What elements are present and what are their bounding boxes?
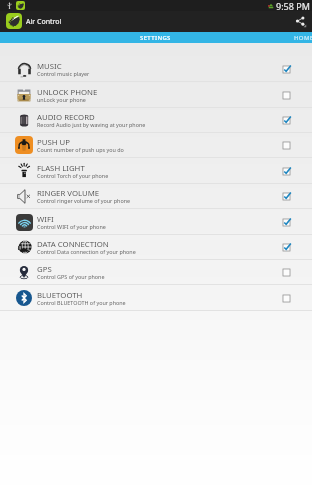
button[interactable]: RINGER VOLUME — [0, 184, 312, 209]
button[interactable]: SETTINGS — [16, 32, 294, 43]
staticText: SETTINGS — [140, 34, 171, 42]
staticText: Control GPS of your phone — [37, 273, 105, 280]
staticText: WIFI — [37, 214, 54, 225]
button[interactable]: UNLOCK PHONE — [0, 83, 312, 108]
staticText: Control Data connection of your phone — [37, 248, 136, 255]
staticText: Record Audio just by waving at your phon… — [37, 121, 146, 128]
button[interactable]: PUSH UP — [0, 133, 312, 158]
staticText: 9:58 PM — [276, 0, 310, 11]
staticText: Control ringer volume of your phone — [37, 197, 131, 204]
staticText: FLASH LIGHT — [37, 163, 85, 174]
staticText: Control BLUETOOTH of your phone — [37, 299, 126, 306]
staticText: PUSH UP — [37, 137, 70, 148]
staticText: RINGER VOLUME — [37, 188, 100, 199]
button[interactable]: MUSIC — [0, 57, 312, 82]
staticText: unLock your phone — [37, 96, 86, 103]
staticText: MUSIC — [37, 61, 62, 72]
staticText: Air Control — [26, 17, 62, 27]
staticText: Count number of push ups you do — [37, 146, 124, 153]
staticText: Control WIFI of your phone — [37, 223, 106, 230]
button[interactable]: DATA CONNECTION — [0, 235, 312, 260]
button[interactable]: WIFI — [0, 210, 312, 235]
staticText: DATA CONNECTION — [37, 239, 109, 250]
staticText: Control music player — [37, 70, 90, 77]
staticText: BLUETOOTH — [37, 290, 83, 301]
button[interactable]: BLUETOOTH — [0, 286, 312, 311]
staticText: HOME — [294, 34, 312, 42]
button[interactable]: Share — [288, 11, 312, 32]
staticText: GPS — [37, 264, 52, 275]
staticText: Control Torch of your phone — [37, 172, 109, 179]
button[interactable]: AUDIO RECORD — [0, 108, 312, 133]
button[interactable]: GPS — [0, 260, 312, 285]
button[interactable]: HOME — [292, 32, 312, 43]
button[interactable]: FLASH LIGHT — [0, 159, 312, 184]
staticText: AUDIO RECORD — [37, 112, 95, 123]
staticText: UNLOCK PHONE — [37, 87, 98, 98]
